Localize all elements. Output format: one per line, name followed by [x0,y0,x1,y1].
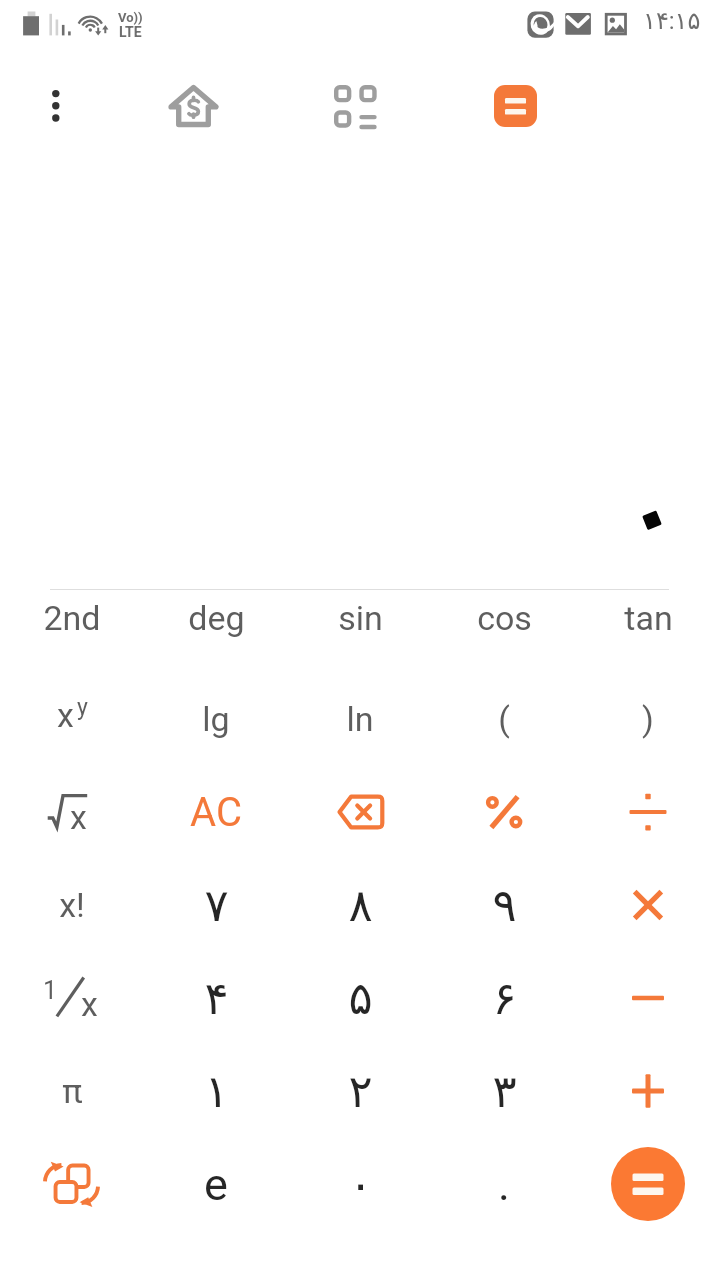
button[interactable]: 2nd [0,572,144,664]
button[interactable]: . [432,1138,576,1230]
button[interactable]: tan [576,572,720,664]
staticText: AC [190,789,242,836]
button[interactable]: Multiply [576,859,720,951]
button[interactable]: ln [288,673,432,765]
button[interactable]: ۰ [288,1138,432,1230]
staticText: ۰ [348,1158,373,1210]
button[interactable]: ۵ [288,952,432,1044]
button[interactable]: ۸ [288,859,432,951]
button[interactable]: ۳ [432,1045,576,1137]
staticText: π [62,1071,83,1111]
staticText: ۳ [492,1065,517,1117]
button[interactable]: Unit converter [334,85,375,126]
staticText: ۷ [204,879,229,931]
button[interactable]: Convert [0,1138,144,1230]
button[interactable]: Backspace [288,766,432,858]
staticText: deg [188,598,245,638]
button[interactable]: π [0,1045,144,1137]
staticText: sin [338,598,383,638]
button[interactable]: Minus [576,952,720,1044]
staticText: ۵ [348,972,373,1024]
staticText: ۱۴:۱۵ [643,7,701,35]
staticText: ۶ [492,972,517,1024]
staticText: x [57,695,74,735]
staticText: y [77,694,88,721]
staticText: ۹ [492,879,517,931]
staticText: ۸ [348,879,373,931]
staticText: x [81,984,98,1024]
button[interactable]: ۶ [432,952,576,1044]
staticText: LTE [119,24,142,40]
button[interactable]: lg [144,673,288,765]
button[interactable]: ۱ [144,1045,288,1137]
button[interactable]: ۲ [288,1045,432,1137]
staticText: 2nd [43,598,101,638]
staticText: ۲ [348,1065,373,1117]
button[interactable]: Divide [576,766,720,858]
button[interactable]: More options [32,82,80,130]
staticText: e [204,1158,228,1211]
staticText: 1 [43,976,58,1005]
button[interactable]: AC [144,766,288,858]
button[interactable]: Plus [576,1045,720,1137]
staticText: ( [498,699,510,739]
button[interactable]: x [0,766,144,858]
button[interactable]: ۹ [432,859,576,951]
button[interactable]: sin [288,572,432,664]
staticText: x! [59,885,85,925]
staticText: x [70,797,87,837]
button[interactable]: Equals [611,1147,685,1221]
button[interactable]: ) [576,673,720,765]
button[interactable]: Mortgage [168,84,219,128]
button[interactable]: ۴ [144,952,288,1044]
button[interactable]: Percent [432,766,576,858]
staticText: cos [477,598,532,638]
button[interactable]: deg [144,572,288,664]
button[interactable]: x [0,673,144,765]
button[interactable]: 1 [0,952,144,1044]
staticText: ۴ [204,972,229,1024]
staticText: tan [624,598,673,638]
button[interactable]: ۷ [144,859,288,951]
staticText: ۱ [204,1065,229,1117]
staticText: lg [202,699,230,739]
staticText: . [498,1158,510,1211]
button[interactable]: x! [0,859,144,951]
button[interactable]: cos [432,572,576,664]
staticText: ln [346,699,374,739]
button[interactable]: Calculator [494,85,537,127]
staticText: Vo)) [118,10,143,25]
button[interactable]: ( [432,673,576,765]
staticText: ) [642,699,654,739]
button[interactable]: e [144,1138,288,1230]
